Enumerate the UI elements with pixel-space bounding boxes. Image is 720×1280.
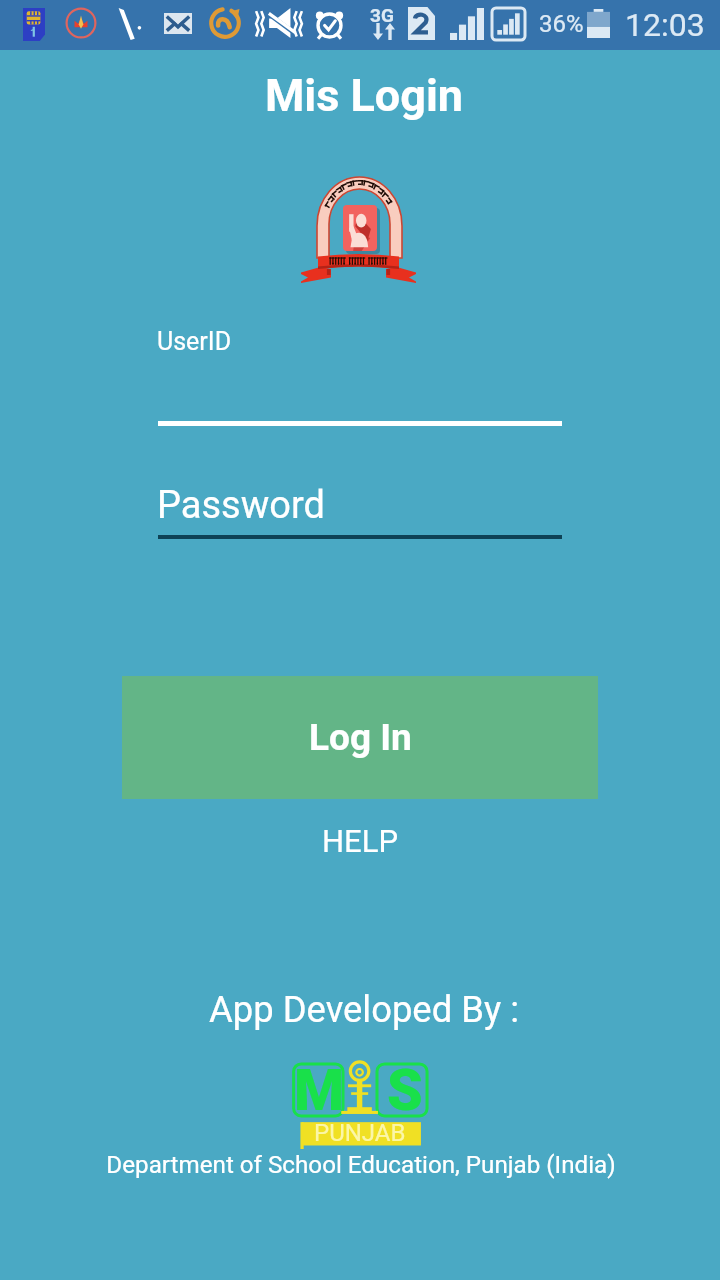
button[interactable]: HELP <box>290 812 430 870</box>
staticText: App Developed By : <box>4 988 720 1031</box>
staticText: S <box>387 1057 423 1124</box>
staticText: UserID <box>157 327 232 356</box>
staticText: PUNJAB <box>314 1119 406 1147</box>
staticText: Department of School Education, Punjab (… <box>1 1151 720 1179</box>
staticText: HELP <box>322 823 398 859</box>
staticText: M <box>294 1057 344 1124</box>
other: MIS Punjab logo <box>292 1061 428 1149</box>
staticText: Log In <box>309 716 412 759</box>
button[interactable]: UserID <box>158 322 562 426</box>
staticText: 3G <box>370 4 394 26</box>
button[interactable]: Log In <box>122 676 598 799</box>
staticText: Password <box>157 483 325 528</box>
staticText: 12:03 <box>625 6 705 44</box>
other: e-Punjab School Education Department emb… <box>298 164 422 294</box>
button[interactable]: Password <box>158 478 562 539</box>
staticText: Mis Login <box>4 69 720 122</box>
staticText: 36% <box>539 10 584 38</box>
